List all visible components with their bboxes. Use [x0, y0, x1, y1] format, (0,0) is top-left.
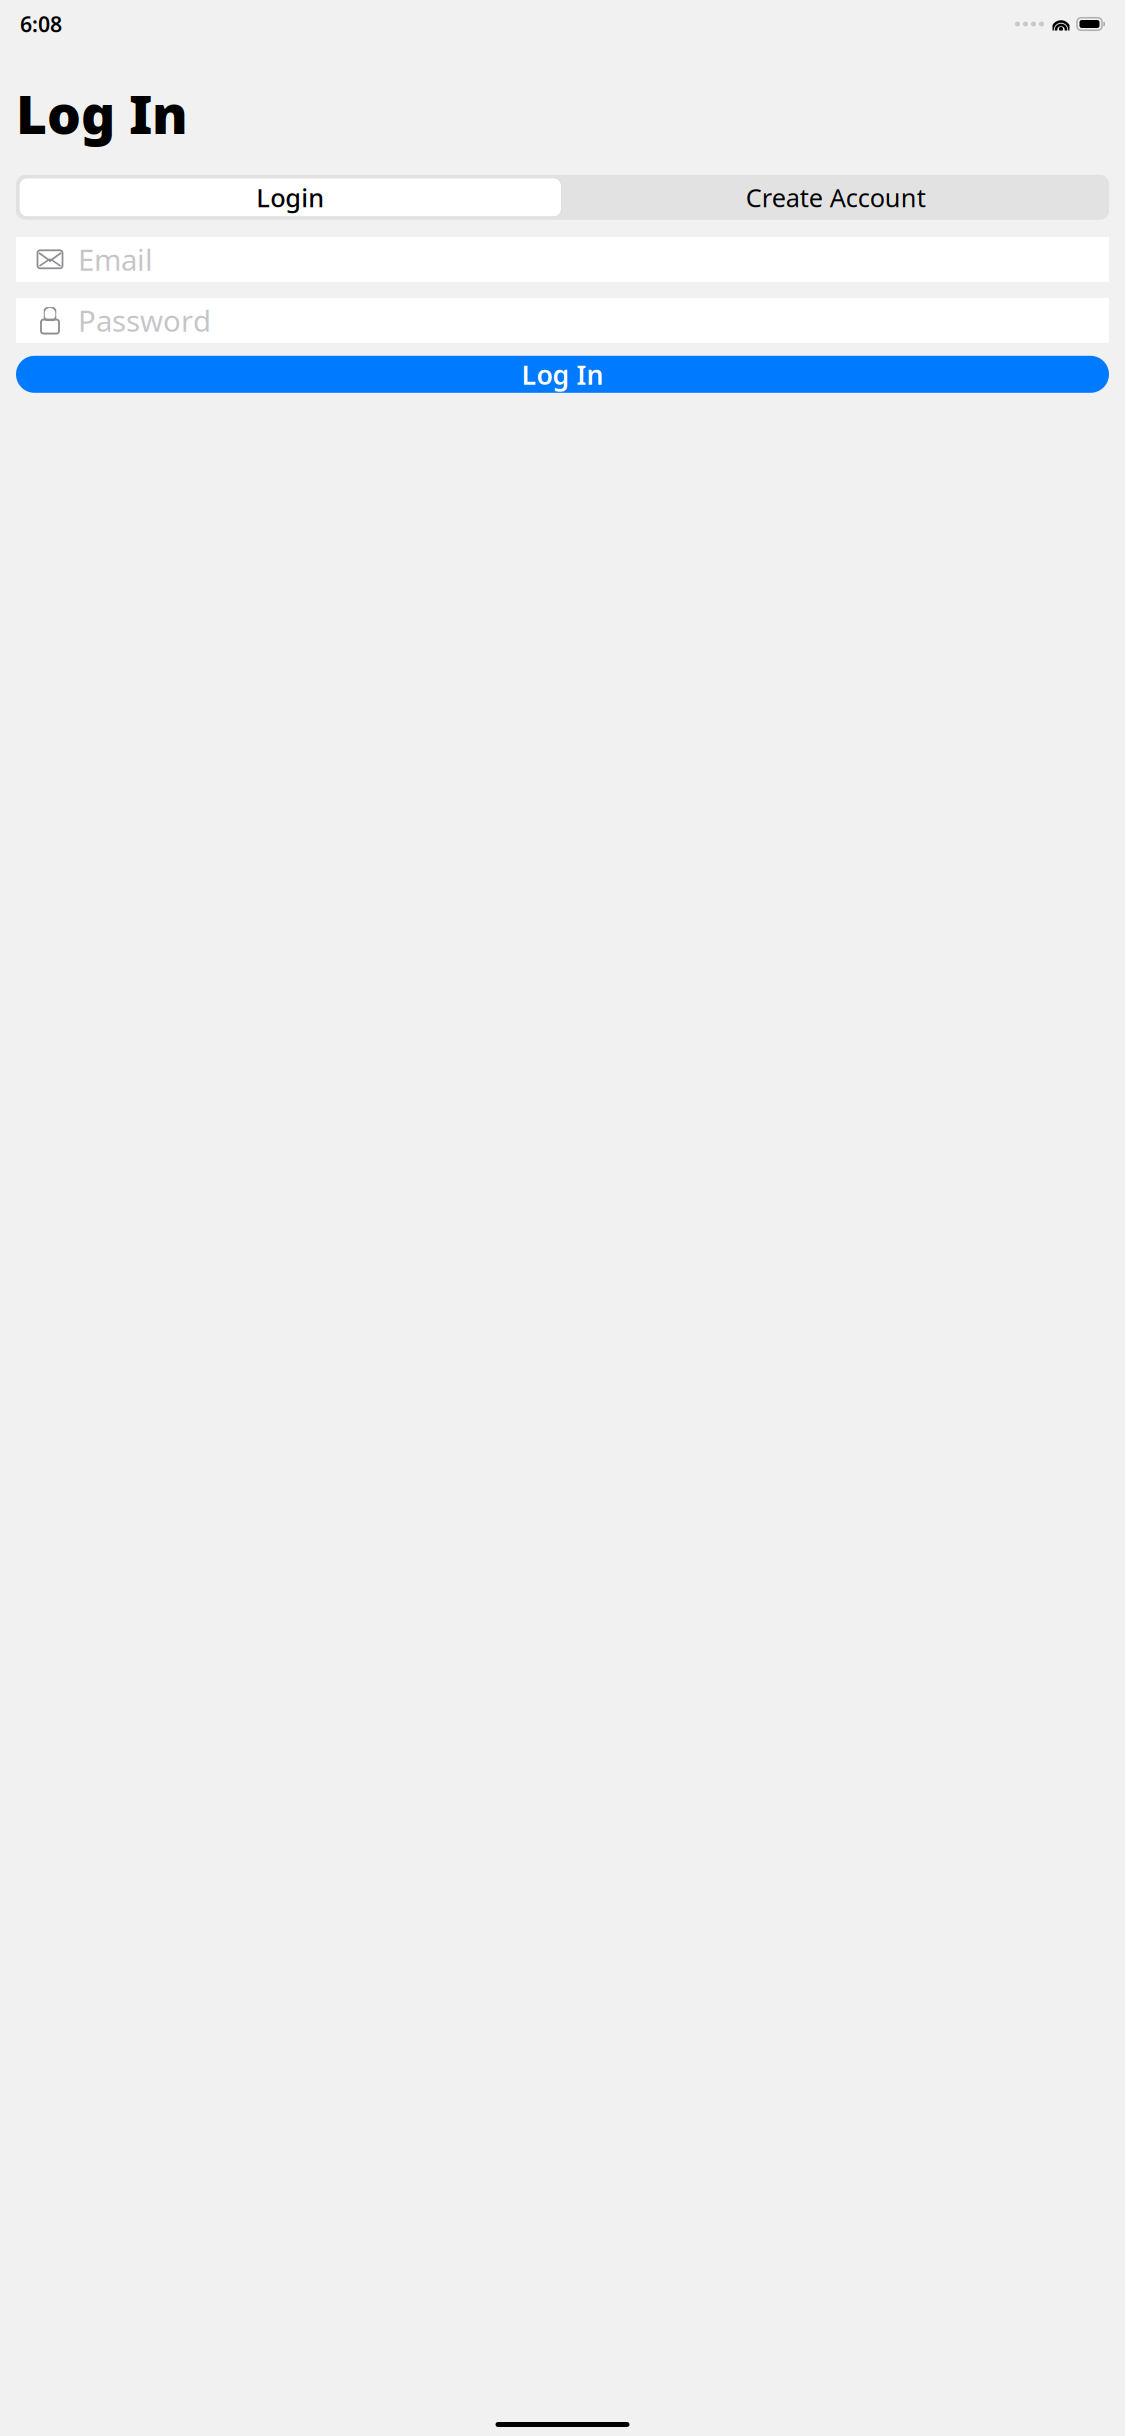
staticText: Login: [256, 180, 324, 214]
staticText: 6:08: [20, 10, 62, 38]
staticText: Password: [78, 301, 211, 340]
staticText: Log In: [521, 357, 603, 392]
staticText: Log In: [16, 78, 188, 149]
button[interactable]: Log In: [16, 356, 1109, 393]
button[interactable]: Password: [16, 298, 1109, 343]
button[interactable]: Login: [16, 178, 562, 217]
staticText: Email: [78, 240, 153, 279]
staticText: Create Account: [746, 180, 926, 214]
button[interactable]: Create Account: [562, 178, 1109, 217]
button[interactable]: Email: [16, 237, 1109, 282]
